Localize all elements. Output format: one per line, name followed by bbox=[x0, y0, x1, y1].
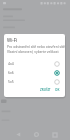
button[interactable]: ZRUŠIT bbox=[38, 86, 53, 94]
button[interactable]: Back bbox=[12, 128, 25, 140]
button[interactable]: 6x6 bbox=[4, 68, 65, 77]
staticText: Pro odstranění sítě nebo otevření sítě V… bbox=[7, 44, 65, 54]
staticText: ZRUŠIT bbox=[40, 88, 51, 92]
button[interactable]: 5x5 bbox=[4, 77, 65, 86]
staticText: 5x5 bbox=[8, 79, 14, 84]
button[interactable]: 4x4 bbox=[4, 59, 65, 68]
staticText: OK bbox=[55, 88, 60, 92]
staticText: Wi-Fi bbox=[7, 37, 18, 43]
button[interactable]: Home bbox=[30, 128, 43, 140]
staticText: 4x4 bbox=[8, 61, 14, 66]
button[interactable]: Recents bbox=[48, 128, 61, 140]
staticText: 6x6 bbox=[8, 70, 14, 75]
button[interactable]: OK bbox=[53, 86, 61, 94]
